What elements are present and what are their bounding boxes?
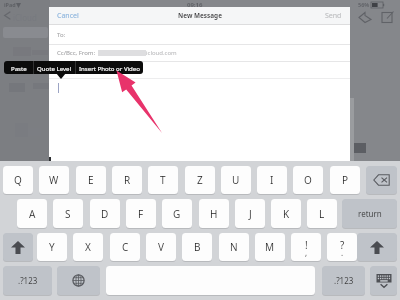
button[interactable]: Z: [185, 166, 215, 194]
staticText: G: [173, 207, 181, 221]
button[interactable]: B: [182, 233, 212, 261]
button[interactable]: C: [110, 233, 140, 261]
staticText: M: [265, 240, 275, 254]
button[interactable]: F: [126, 199, 156, 228]
staticText: E: [88, 173, 94, 187]
button[interactable]: U: [221, 166, 251, 194]
button[interactable]: I: [257, 166, 287, 194]
staticText: C: [122, 240, 129, 254]
button[interactable]: Backspace: [366, 166, 397, 194]
staticText: return: [358, 208, 382, 219]
button[interactable]: Hide keyboard: [370, 266, 397, 295]
staticText: P: [342, 173, 349, 187]
staticText: icloud.com: [146, 49, 177, 57]
staticText: Insert Photo or Video: [79, 64, 140, 72]
staticText: .?123: [18, 275, 38, 286]
staticText: ?: [340, 238, 345, 252]
staticText: R: [124, 173, 131, 187]
button[interactable]: J: [235, 199, 265, 228]
staticText: Y: [49, 240, 55, 254]
button[interactable]: V: [146, 233, 176, 261]
button[interactable]: S: [53, 199, 83, 228]
staticText: A: [29, 207, 36, 221]
staticText: I: [270, 173, 274, 187]
button[interactable]: H: [199, 199, 229, 228]
staticText: F: [138, 207, 144, 221]
button[interactable]: P: [330, 166, 360, 194]
button[interactable]: Change keyboard: [57, 266, 100, 295]
button[interactable]: D: [90, 199, 120, 228]
staticText: To:: [57, 31, 66, 39]
button[interactable]: Paste: [4, 61, 33, 74]
button[interactable]: Compose: [380, 10, 396, 24]
staticText: N: [230, 240, 238, 254]
button[interactable]: Reply: [357, 10, 373, 24]
staticText: D: [101, 207, 109, 221]
staticText: iPad: [4, 1, 16, 8]
button[interactable]: M: [255, 233, 285, 261]
staticText: Cc/Bcc, From:: [57, 49, 96, 57]
button[interactable]: G: [162, 199, 192, 228]
staticText: T: [160, 173, 166, 187]
button[interactable]: N: [219, 233, 249, 261]
button[interactable]: Y: [37, 233, 67, 261]
staticText: W: [49, 173, 59, 187]
staticText: Q: [14, 173, 22, 187]
button[interactable]: T: [148, 166, 178, 194]
staticText: Quote Level: [37, 64, 72, 72]
button[interactable]: K: [271, 199, 301, 228]
staticText: .: [341, 247, 344, 258]
button[interactable]: .?123: [322, 266, 365, 295]
button[interactable]: return: [342, 199, 397, 228]
button[interactable]: Q: [3, 166, 33, 194]
staticText: ,: [305, 247, 308, 258]
staticText: 56%: [358, 1, 370, 8]
staticText: U: [232, 173, 240, 187]
staticText: H: [210, 207, 218, 221]
button[interactable]: .?123: [3, 266, 52, 295]
staticText: .?123: [334, 275, 354, 286]
staticText: Paste: [11, 64, 27, 72]
button[interactable]: Cancel: [57, 11, 79, 21]
staticText: Z: [197, 173, 203, 187]
staticText: Cancel: [57, 11, 79, 21]
button[interactable]: Shift: [3, 233, 33, 261]
staticText: X: [85, 240, 91, 254]
staticText: J: [249, 207, 252, 221]
button[interactable]: Send: [325, 11, 342, 21]
staticText: O: [304, 173, 312, 187]
button[interactable]: E: [76, 166, 106, 194]
button[interactable]: R: [112, 166, 142, 194]
staticText: V: [158, 240, 164, 254]
button[interactable]: Shift: [357, 233, 397, 261]
button[interactable]: !: [291, 233, 321, 261]
staticText: Subject:: [57, 66, 80, 74]
button[interactable]: Quote Level: [34, 61, 75, 74]
staticText: 09:16: [187, 1, 203, 9]
button[interactable]: W: [39, 166, 69, 194]
button[interactable]: Insert Photo or Video: [76, 61, 143, 74]
button[interactable]: ?: [327, 233, 357, 261]
button[interactable]: L: [307, 199, 337, 228]
staticText: !: [305, 238, 308, 252]
staticText: B: [194, 240, 201, 254]
staticText: Send: [325, 11, 342, 21]
button[interactable]: X: [73, 233, 103, 261]
staticText: New Message: [178, 11, 222, 20]
button[interactable]: A: [17, 199, 47, 228]
staticText: S: [65, 207, 71, 221]
button[interactable]: O: [293, 166, 323, 194]
staticText: L: [319, 207, 325, 221]
staticText: K: [283, 207, 290, 221]
